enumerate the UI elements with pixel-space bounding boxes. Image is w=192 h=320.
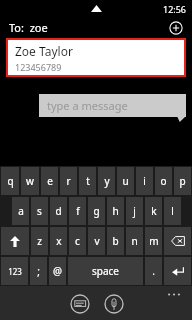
staticText: s	[37, 204, 42, 218]
button[interactable]: b	[107, 227, 124, 255]
button[interactable]: k	[145, 197, 162, 225]
button[interactable]: Add contact	[169, 21, 183, 35]
button[interactable]: Enter	[164, 257, 191, 285]
button[interactable]: i	[136, 167, 153, 195]
button[interactable]: f	[69, 197, 86, 225]
staticText: h	[112, 204, 119, 218]
staticText: a	[18, 204, 24, 218]
button[interactable]: x	[50, 227, 67, 255]
staticText: o	[160, 174, 167, 188]
button[interactable]: q	[1, 167, 19, 195]
button[interactable]: z	[31, 227, 48, 255]
staticText: @	[53, 264, 62, 278]
button[interactable]: 123	[1, 257, 28, 285]
staticText: j	[133, 204, 136, 218]
button[interactable]: Attach	[103, 293, 124, 314]
staticText: p	[179, 174, 186, 188]
button[interactable]: t	[79, 167, 96, 195]
button[interactable]: l	[164, 197, 181, 225]
button[interactable]: u	[117, 167, 134, 195]
button[interactable]: @	[49, 257, 66, 285]
staticText: 123456789	[15, 61, 62, 73]
staticText: y	[104, 174, 110, 188]
button[interactable]: .	[145, 257, 162, 285]
button[interactable]: r	[60, 167, 77, 195]
button[interactable]: d	[50, 197, 67, 225]
button[interactable]: Zoe Taylor	[8, 40, 184, 75]
staticText: Zoe Taylor	[15, 43, 73, 59]
staticText: ;	[37, 264, 40, 278]
button[interactable]: a	[12, 197, 29, 225]
button[interactable]: m	[145, 227, 162, 255]
staticText: q	[7, 174, 14, 188]
staticText: b	[112, 234, 119, 248]
button[interactable]: ;	[30, 257, 47, 285]
staticText: e	[47, 174, 53, 188]
button[interactable]: Shift	[1, 227, 29, 255]
staticText: f	[76, 204, 80, 218]
staticText: i	[143, 174, 146, 188]
staticText: x	[56, 234, 62, 248]
staticText: g	[93, 204, 100, 218]
button[interactable]: v	[88, 227, 105, 255]
button[interactable]: type a message	[39, 94, 186, 117]
staticText: type a message	[47, 98, 128, 113]
button[interactable]: o	[155, 167, 172, 195]
staticText: l	[171, 204, 174, 218]
button[interactable]: n	[126, 227, 143, 255]
button[interactable]: g	[88, 197, 105, 225]
staticText: k	[151, 204, 157, 218]
button[interactable]: Backspace	[164, 227, 191, 255]
staticText: m	[149, 234, 159, 248]
staticText: d	[55, 204, 62, 218]
staticText: t	[86, 174, 90, 188]
staticText: space	[92, 264, 119, 278]
button[interactable]: c	[69, 227, 86, 255]
staticText: 12:56	[163, 3, 187, 15]
staticText: r	[66, 174, 71, 188]
staticText: 123	[8, 266, 22, 277]
button[interactable]: j	[126, 197, 143, 225]
staticText: v	[94, 234, 100, 248]
button[interactable]: p	[174, 167, 191, 195]
button[interactable]: s	[31, 197, 48, 225]
button[interactable]: e	[41, 167, 58, 195]
staticText: .	[152, 264, 155, 278]
staticText: n	[131, 234, 138, 248]
button[interactable]: w	[21, 167, 39, 195]
button[interactable]: space	[68, 257, 143, 285]
button[interactable]: More options	[167, 291, 181, 298]
button[interactable]: y	[98, 167, 115, 195]
staticText: c	[75, 234, 80, 248]
staticText: u	[122, 174, 129, 188]
button[interactable]: To: zoe	[0, 17, 192, 38]
staticText: To: zoe	[9, 20, 48, 35]
button[interactable]: Send message	[69, 293, 90, 314]
staticText: z	[37, 234, 42, 248]
button[interactable]: h	[107, 197, 124, 225]
staticText: w	[26, 174, 34, 188]
